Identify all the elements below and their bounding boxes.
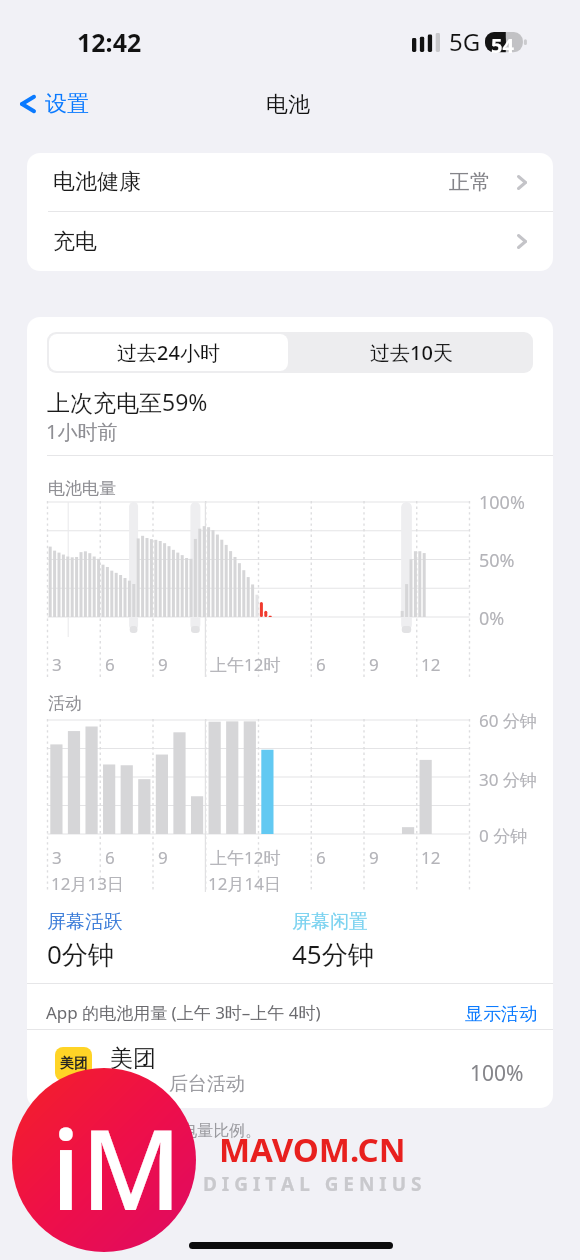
staticText: 屏幕闲置: [292, 910, 368, 934]
staticText: 正常: [449, 169, 491, 195]
staticText: 9: [158, 846, 168, 869]
staticText: 充电: [53, 228, 97, 256]
staticText: 6: [316, 653, 326, 676]
staticText: 美团: [110, 1044, 156, 1073]
staticText: 50%: [479, 548, 515, 573]
button[interactable]: 过去10天: [290, 332, 533, 373]
staticText: 3: [52, 846, 62, 869]
staticText: 电池健康: [53, 168, 141, 196]
staticText: 活动: [48, 693, 82, 714]
staticText: 过去24小时: [117, 339, 220, 366]
staticText: 所示为各 App 的耗电量比例。: [47, 1119, 262, 1141]
staticText: 12: [421, 653, 441, 676]
staticText: 设置: [45, 90, 89, 118]
staticText: 0 分钟: [479, 824, 528, 847]
staticText: 上次充电至59%: [47, 386, 208, 417]
staticText: 6: [105, 846, 115, 869]
staticText: 12月13日: [51, 872, 124, 895]
staticText: 0%: [479, 606, 505, 631]
staticText: 45分钟: [292, 936, 374, 972]
staticText: 3: [52, 653, 62, 676]
staticText: 电池电量: [48, 478, 116, 499]
staticText: 9: [158, 653, 168, 676]
staticText: 60 分钟: [479, 709, 537, 732]
staticText: 12月14日: [208, 872, 281, 895]
staticText: 100%: [479, 490, 525, 515]
staticText: 上午12时: [210, 846, 281, 869]
staticText: 显示活动: [465, 1003, 537, 1026]
staticText: 5G: [449, 25, 481, 58]
staticText: 屏幕活跃: [47, 910, 123, 934]
staticText: MAVOM.CN: [219, 1127, 406, 1172]
staticText: 9: [369, 846, 379, 869]
staticText: 过去10天: [370, 339, 453, 366]
staticText: 100%: [470, 1059, 524, 1088]
staticText: 1小时前: [46, 418, 118, 445]
button[interactable]: 过去24小时: [49, 334, 288, 371]
staticText: 后台活动: [169, 1072, 245, 1096]
staticText: 美团: [60, 1055, 88, 1073]
staticText: App 的电池用量 (上午 3时–上午 4时): [46, 1001, 321, 1024]
button[interactable]: 美团: [27, 1030, 553, 1108]
staticText: 上午12时: [210, 653, 281, 676]
button[interactable]: 设置: [16, 86, 93, 122]
staticText: 30 分钟: [479, 768, 537, 791]
button[interactable]: 电池健康: [27, 153, 553, 211]
staticText: 12: [421, 846, 441, 869]
staticText: 54: [491, 32, 514, 59]
staticText: 9: [369, 653, 379, 676]
staticText: 电池: [266, 91, 310, 119]
staticText: 6: [316, 846, 326, 869]
button[interactable]: 充电: [27, 212, 553, 271]
staticText: 0分钟: [47, 936, 114, 972]
staticText: iM: [51, 1092, 182, 1242]
staticText: 6: [105, 653, 115, 676]
staticText: 12:42: [77, 25, 142, 59]
button[interactable]: 显示活动: [463, 1001, 539, 1028]
staticText: D I G I T A L G E N I U S: [203, 1171, 422, 1197]
